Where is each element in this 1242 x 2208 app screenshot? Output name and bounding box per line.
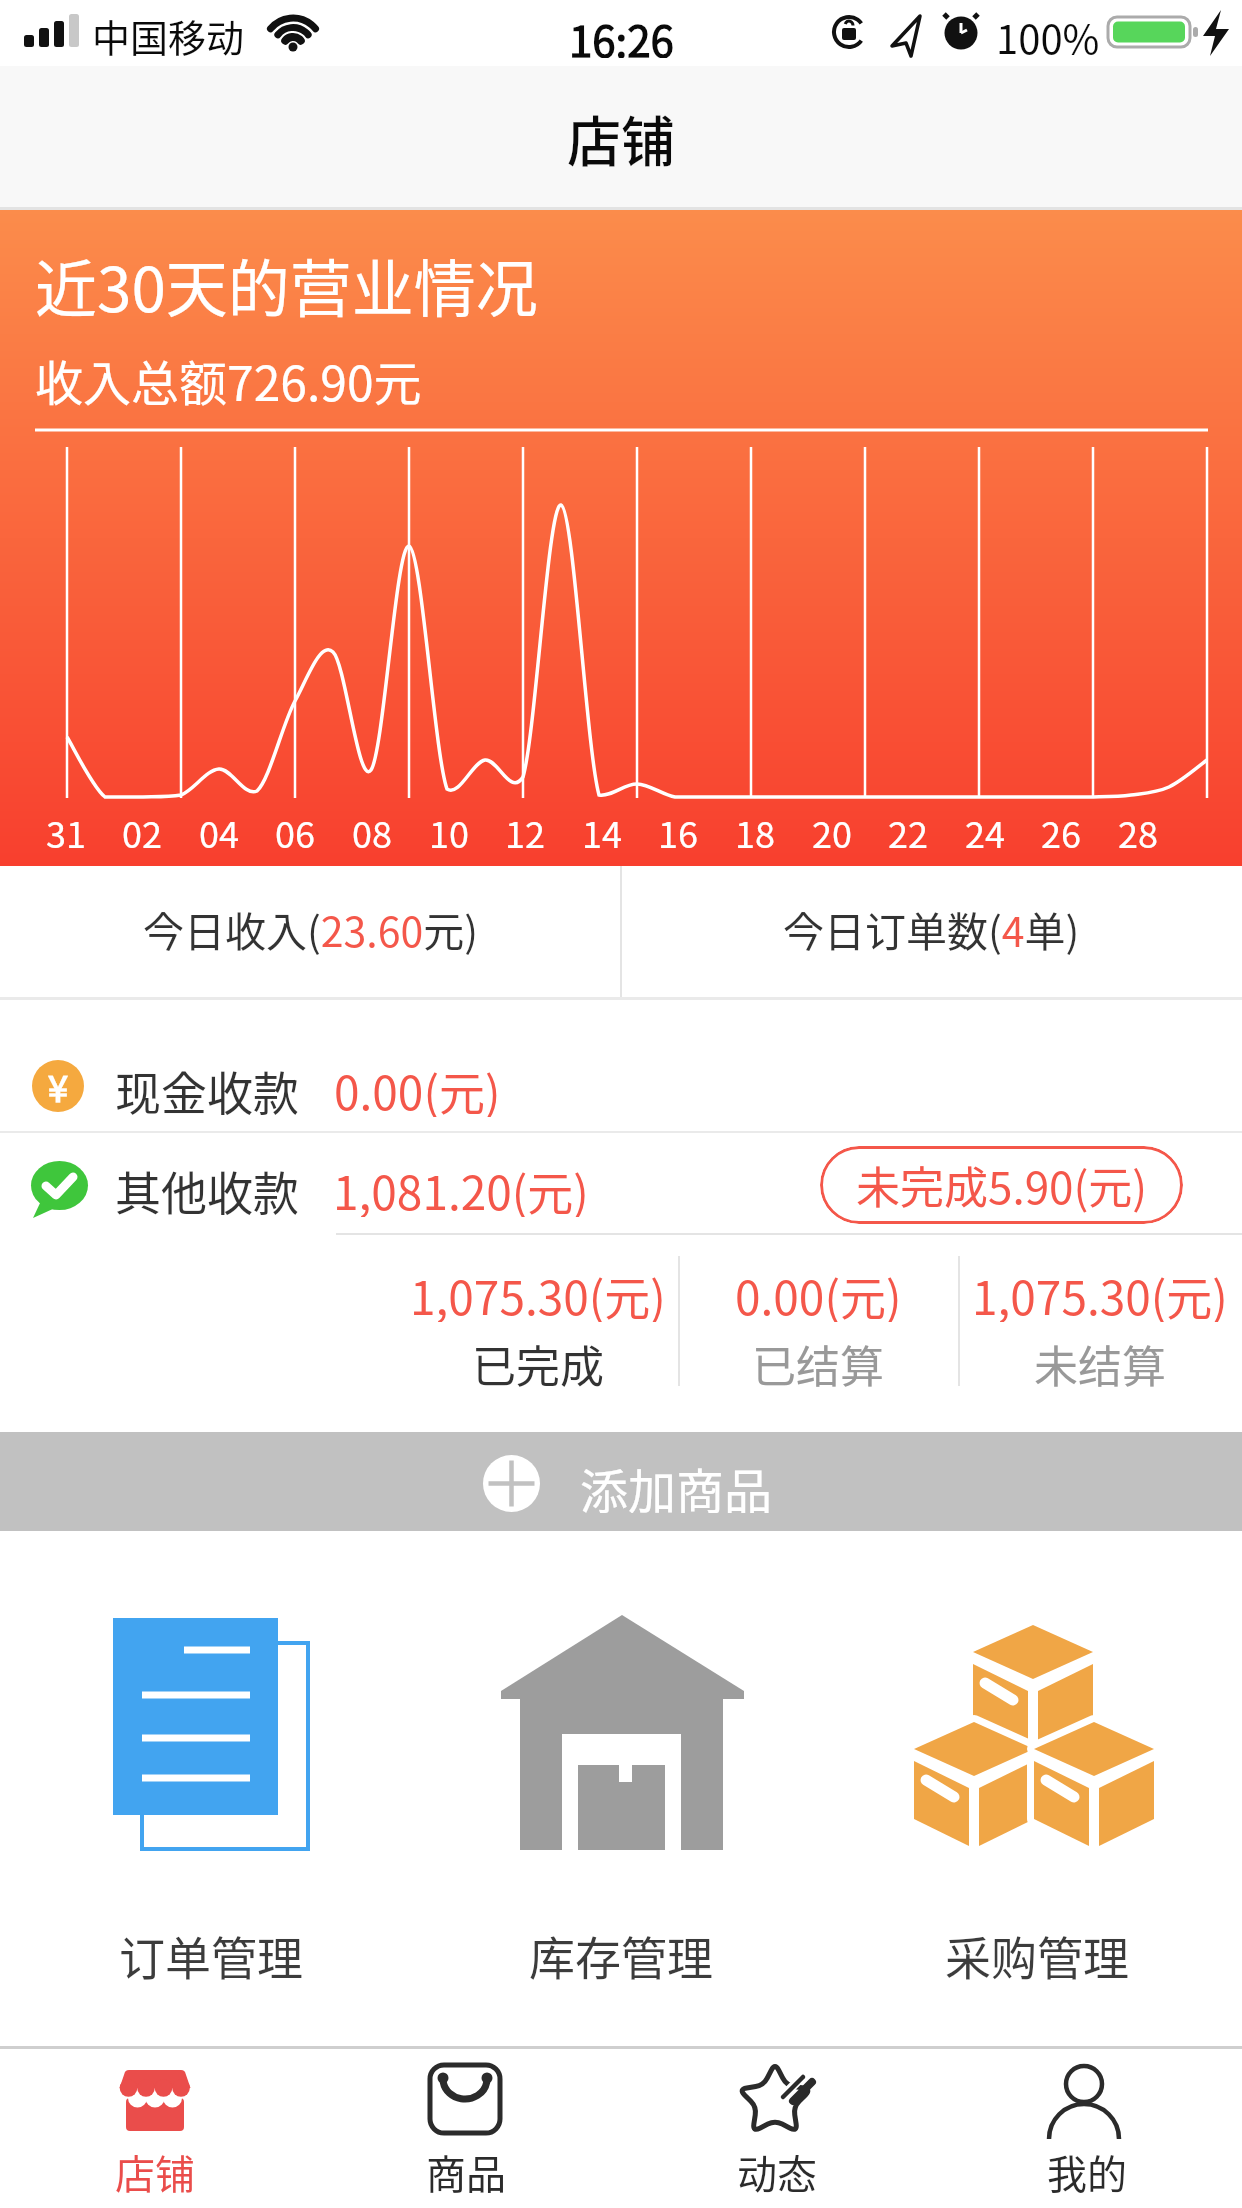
staticText: 采购管理 [945,1922,1129,1982]
button[interactable] [0,1133,1242,1237]
staticText: 今日收入(23.60元) [143,899,479,958]
staticText: 20 [812,806,852,850]
button[interactable] [621,2049,932,2208]
staticText: 中国移动 [92,8,245,58]
staticText: 近30天的营业情况 [35,240,538,326]
button[interactable] [0,2049,310,2208]
button[interactable]: 今日收入(23.60元) [0,878,621,978]
staticText: 今日订单数(4单) [783,899,1080,958]
staticText: 28 [1118,806,1158,850]
staticText: 其他收款 [115,1157,299,1217]
button[interactable]: 今日订单数(4单) [621,878,1242,978]
staticText: 22 [888,806,928,850]
staticText: 商品 [426,2143,506,2193]
staticText: ¥ [48,1060,68,1112]
staticText: 24 [965,806,1005,850]
button[interactable] [310,2049,621,2208]
button[interactable] [0,1432,1242,1531]
staticText: 04 [199,806,239,850]
staticText: 添加商品 [580,1453,773,1513]
staticText: 订单管理 [119,1922,303,1982]
staticText: 已完成 [472,1332,604,1392]
staticText: 收入总额726.90元 [35,345,422,411]
staticText: 动态 [737,2143,817,2193]
staticText: 现金收款 [115,1057,299,1117]
staticText: 未结算 [1034,1332,1166,1392]
staticText: 0.00(元) [334,1057,501,1117]
button[interactable] [0,1000,1242,1131]
button[interactable]: 库存管理 [501,1922,741,1982]
staticText: 06 [275,806,315,850]
staticText: 02 [122,806,162,850]
staticText: 未完成5.90(元) [856,1153,1148,1217]
button[interactable]: 订单管理 [91,1922,331,1982]
staticText: 10 [429,806,469,850]
staticText: 已结算 [752,1332,884,1392]
staticText: 1,075.30(元) [410,1262,666,1322]
staticText: 16:26 [569,8,674,58]
button[interactable] [113,1618,313,1850]
button[interactable]: 未完成5.90(元) [820,1146,1183,1224]
staticText: 店铺 [115,2143,195,2193]
button[interactable] [932,2049,1242,2208]
button[interactable] [501,1615,745,1850]
staticText: 12 [505,806,545,850]
staticText: 1,075.30(元) [972,1262,1228,1322]
staticText: 18 [735,806,775,850]
staticText: 我的 [1047,2143,1127,2193]
staticText: 库存管理 [529,1922,713,1982]
staticText: 16 [658,806,698,850]
staticText: 0.00(元) [735,1262,902,1322]
staticText: 1,081.20(元) [333,1157,589,1217]
staticText: 08 [352,806,392,850]
staticText: 31 [46,806,86,850]
button[interactable] [905,1615,1165,1855]
staticText: 100% [996,8,1100,58]
button[interactable]: 采购管理 [917,1922,1157,1982]
staticText: 26 [1041,806,1081,850]
staticText: 店铺 [567,99,675,177]
staticText: 14 [582,806,622,850]
